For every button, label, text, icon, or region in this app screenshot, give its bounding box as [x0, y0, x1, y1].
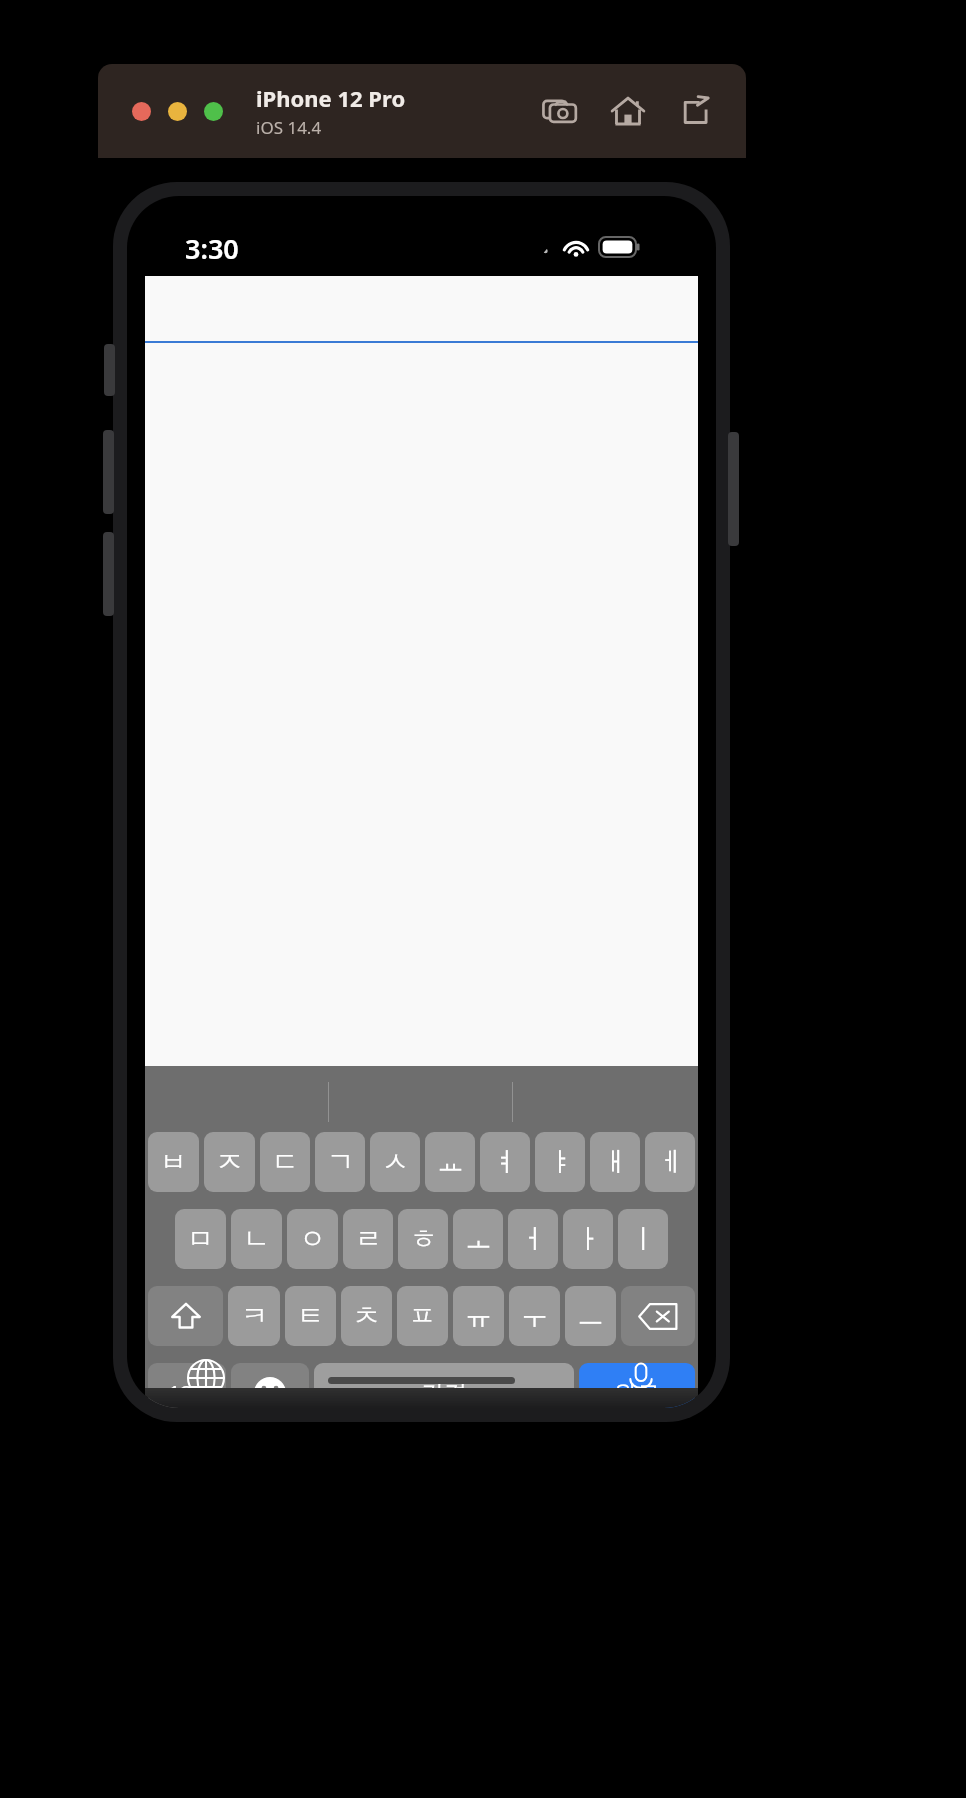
button[interactable]: ㅑ — [535, 1132, 585, 1192]
staticText: 123 — [168, 1378, 206, 1408]
button[interactable]: ㄷ — [260, 1132, 310, 1192]
staticText: ㅣ — [630, 1222, 657, 1256]
button[interactable]: ㅏ — [563, 1209, 613, 1269]
staticText: ㅜ — [521, 1299, 548, 1333]
button[interactable]: ㅡ — [565, 1286, 616, 1346]
staticText: ㅈ — [216, 1145, 243, 1179]
staticText: ㅇ — [299, 1222, 326, 1256]
staticText: iPhone 12 Pro — [256, 83, 406, 113]
button[interactable]: Dictation — [617, 1354, 665, 1402]
button[interactable]: Emoji — [231, 1363, 309, 1408]
button[interactable]: ㅌ — [285, 1286, 336, 1346]
button[interactable]: ㅇ — [287, 1209, 338, 1269]
button[interactable]: ㄴ — [231, 1209, 282, 1269]
button[interactable]: ㅓ — [508, 1209, 558, 1269]
button[interactable]: ㅔ — [645, 1132, 695, 1192]
button[interactable]: ㅈ — [204, 1132, 255, 1192]
button[interactable]: Next keyboard — [182, 1354, 230, 1402]
button[interactable]: ㄱ — [315, 1132, 365, 1192]
button[interactable]: Screenshot — [538, 89, 582, 133]
button[interactable]: Home — [606, 89, 650, 133]
button[interactable]: ㅊ — [341, 1286, 392, 1346]
staticText: ㅊ — [353, 1299, 380, 1333]
staticText: 완료 — [614, 1379, 660, 1408]
button[interactable]: ㅛ — [425, 1132, 475, 1192]
button[interactable] — [132, 102, 151, 121]
button[interactable]: ㅠ — [453, 1286, 504, 1346]
staticText: ㅑ — [547, 1145, 574, 1179]
button[interactable]: Shift — [148, 1286, 223, 1346]
button[interactable]: ㄹ — [343, 1209, 393, 1269]
staticText: ㄴ — [243, 1222, 270, 1256]
staticText: ㅅ — [382, 1145, 409, 1179]
button[interactable]: ㅎ — [398, 1209, 448, 1269]
button[interactable]: ㅍ — [397, 1286, 448, 1346]
staticText: ㄹ — [355, 1222, 382, 1256]
staticText: ㅕ — [492, 1145, 519, 1179]
staticText: iOS 14.4 — [256, 116, 322, 139]
staticText: ㅏ — [575, 1222, 602, 1256]
staticText: ㄷ — [272, 1145, 299, 1179]
button[interactable]: ㅣ — [618, 1209, 668, 1269]
button[interactable]: ㅐ — [590, 1132, 640, 1192]
button[interactable]: Backspace — [621, 1286, 695, 1346]
button[interactable]: ㅁ — [175, 1209, 226, 1269]
button[interactable]: ㅋ — [228, 1286, 280, 1346]
staticText: ㅁ — [187, 1222, 214, 1256]
button[interactable]: ㅗ — [453, 1209, 503, 1269]
staticText: ㄱ — [327, 1145, 354, 1179]
button[interactable]: ㅜ — [509, 1286, 560, 1346]
button[interactable] — [168, 102, 187, 121]
staticText: ㅡ — [577, 1299, 604, 1333]
button[interactable]: 간격 — [314, 1363, 574, 1408]
staticText: ㅋ — [241, 1299, 268, 1333]
button[interactable]: ㅕ — [480, 1132, 530, 1192]
staticText: ㅛ — [437, 1145, 464, 1179]
staticText: ㅐ — [602, 1145, 629, 1179]
button[interactable]: Rotate — [674, 89, 718, 133]
staticText: ㅎ — [410, 1222, 437, 1256]
staticText: ㅔ — [657, 1145, 684, 1179]
button[interactable]: ㅂ — [148, 1132, 199, 1192]
button[interactable] — [204, 102, 223, 121]
staticText: ㅂ — [160, 1145, 187, 1179]
staticText: ㅓ — [520, 1222, 547, 1256]
staticText: ㅌ — [297, 1299, 324, 1333]
staticText: ㅍ — [409, 1299, 436, 1333]
button[interactable]: ㅅ — [370, 1132, 420, 1192]
button[interactable]: 123 — [148, 1363, 226, 1408]
staticText: 3:30 — [185, 230, 239, 267]
staticText: 간격 — [421, 1379, 467, 1408]
button[interactable]: 완료 — [579, 1363, 695, 1408]
staticText: ㅗ — [465, 1222, 492, 1256]
staticText: ㅠ — [465, 1299, 492, 1333]
